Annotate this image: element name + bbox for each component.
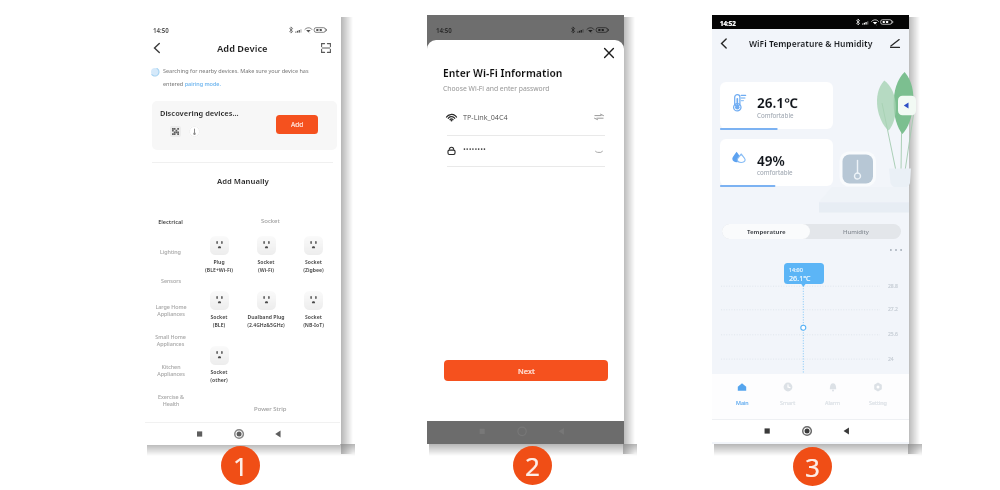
button[interactable]: Device: [170, 126, 181, 137]
staticText: Next: [518, 366, 535, 376]
button[interactable]: Plug (BLE+Wi-Fi): [196, 236, 242, 276]
staticText: Setting: [869, 399, 887, 406]
staticText: TP-Link_04C4: [463, 112, 508, 122]
staticText: Sensors: [161, 277, 181, 284]
button[interactable]: Small Home Appliances: [145, 326, 196, 354]
button[interactable]: Next: [444, 360, 608, 381]
staticText: 14:52: [720, 19, 736, 27]
button[interactable]: Back: [147, 39, 165, 57]
button[interactable]: Switch network: [594, 112, 604, 122]
button[interactable]: Exercise & Health: [145, 386, 196, 414]
staticText: Small Home Appliances: [155, 333, 186, 347]
staticText: WiFi Temperature & Humidity: [749, 38, 873, 49]
staticText: Smart: [780, 399, 796, 406]
staticText: Electrical: [158, 218, 183, 225]
staticText: Socket: [261, 217, 280, 225]
button[interactable]: Socket (NB-IoT): [290, 291, 336, 331]
staticText: Main: [736, 399, 749, 406]
staticText: Searching for nearby devices. Make sure …: [163, 67, 335, 88]
staticText: Discovering devices...: [160, 108, 239, 118]
button[interactable]: 2: [513, 446, 552, 485]
button[interactable]: Large Home Appliances: [145, 296, 196, 324]
button[interactable]: Humidity: [810, 224, 901, 239]
button[interactable]: 26.1℃: [720, 82, 833, 129]
button[interactable]: Add: [276, 115, 318, 134]
button[interactable]: 49%: [720, 139, 833, 186]
button[interactable]: Dualband Plug (2.4GHz&5GHz): [243, 291, 289, 331]
button[interactable]: Socket (Zigbee): [290, 236, 336, 276]
button[interactable]: Sensors: [145, 266, 196, 294]
button[interactable]: 1: [221, 446, 260, 485]
staticText: 14:50: [153, 26, 169, 34]
staticText: 28.8: [888, 283, 898, 290]
button[interactable]: Setting: [857, 377, 899, 412]
staticText: 14:50: [436, 26, 452, 34]
staticText: 26.1℃: [757, 93, 798, 112]
button[interactable]: Socket (BLE): [196, 291, 242, 331]
staticText: Lighting: [160, 248, 181, 255]
button[interactable]: Alarm: [812, 377, 854, 412]
button[interactable]: Electrical: [145, 207, 196, 235]
button[interactable]: Smart: [767, 377, 809, 412]
button[interactable]: Scan: [319, 41, 333, 55]
button[interactable]: Kitchen Appliances: [145, 356, 196, 384]
staticText: Alarm: [825, 399, 841, 406]
staticText: 25.6: [888, 331, 898, 338]
staticText: Socket (BLE): [210, 314, 228, 328]
staticText: Socket (Wi-Fi): [257, 259, 275, 273]
staticText: ...: [439, 36, 444, 44]
staticText: Plug (BLE+Wi-Fi): [205, 259, 233, 273]
staticText: Socket (NB-IoT): [303, 314, 324, 328]
button[interactable]: Temperature: [722, 224, 810, 239]
staticText: Dualband Plug (2.4GHz&5GHz): [247, 314, 285, 328]
staticText: comfortable: [757, 168, 793, 176]
staticText: Exercise & Health: [158, 393, 184, 407]
staticText: 1: [233, 448, 248, 483]
button[interactable]: Socket (other): [196, 346, 242, 386]
button[interactable]: Show password: [594, 146, 604, 156]
button[interactable]: Sensor: [189, 126, 200, 137]
button[interactable]: Back: [714, 35, 731, 52]
staticText: Humidity: [843, 228, 869, 236]
button[interactable]: Main: [721, 377, 763, 412]
staticText: Add Device: [217, 42, 268, 55]
staticText: Socket (Zigbee): [303, 259, 324, 273]
staticText: Kitchen Appliances: [157, 363, 185, 377]
staticText: Comfortable: [757, 111, 794, 119]
button[interactable]: Lighting: [145, 237, 196, 265]
staticText: 24: [888, 356, 894, 363]
staticText: 2: [525, 448, 540, 483]
staticText: Choose Wi-Fi and enter password: [443, 84, 550, 93]
staticText: 14:00: [789, 266, 803, 273]
button[interactable]: More options: [888, 246, 904, 254]
staticText: 26.1℃: [789, 273, 811, 283]
staticText: Add Manually: [217, 176, 269, 186]
staticText: 49%: [757, 151, 785, 170]
button[interactable]: Socket (Wi-Fi): [243, 236, 289, 276]
staticText: Large Home Appliances: [155, 303, 187, 317]
button[interactable]: Close: [602, 46, 616, 60]
staticText: Power Strip: [254, 405, 287, 413]
staticText: Enter Wi-Fi Information: [443, 66, 563, 80]
button[interactable]: Edit: [888, 37, 901, 50]
button[interactable]: 3: [793, 447, 832, 486]
staticText: Temperature: [747, 228, 786, 236]
staticText: 3: [805, 449, 820, 484]
staticText: Socket (other): [210, 369, 228, 383]
staticText: Add: [291, 120, 304, 129]
staticText: 27.2: [888, 306, 898, 313]
staticText: ••••••••: [463, 144, 486, 154]
